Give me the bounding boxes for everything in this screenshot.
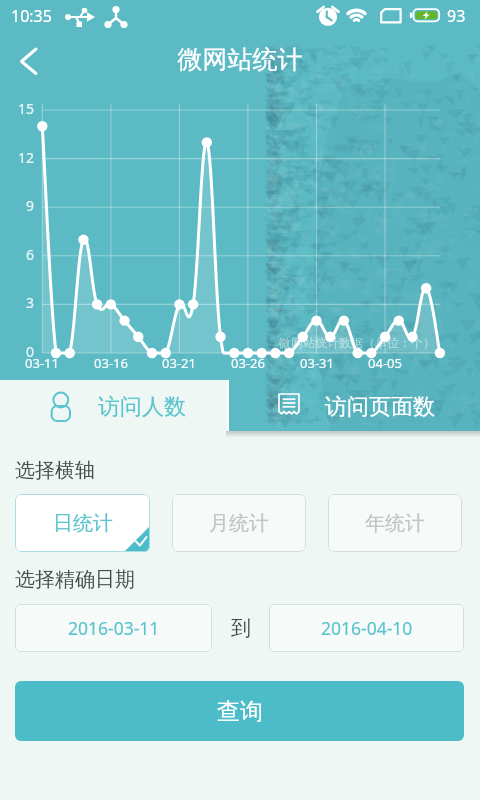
staticText: 10:35 <box>11 5 52 27</box>
button[interactable]: 访问人数 <box>0 380 227 431</box>
staticText: 03-16 <box>81 354 141 372</box>
staticText: 04-05 <box>355 354 415 372</box>
staticText: 03-21 <box>149 354 209 372</box>
staticText: 9 <box>0 196 34 215</box>
staticText: 03-31 <box>287 354 347 372</box>
staticText: 0 <box>0 342 34 361</box>
button[interactable]: 2016-04-10 <box>269 604 464 652</box>
button[interactable]: 日统计 <box>15 494 150 552</box>
staticText: 查询 <box>217 697 263 726</box>
staticText: 日统计 <box>53 511 113 536</box>
button[interactable]: 访问页面数 <box>229 380 480 431</box>
staticText: 月统计 <box>209 511 269 536</box>
staticText: 年统计 <box>365 511 425 536</box>
staticText: 访问人数 <box>98 393 186 421</box>
staticText: 15 <box>0 99 34 118</box>
staticText: 93 <box>447 5 466 27</box>
staticText: 03-11 <box>12 354 72 372</box>
staticText: 12 <box>0 148 34 167</box>
button[interactable]: 年统计 <box>328 494 462 552</box>
staticText: 2016-03-11 <box>68 616 160 640</box>
staticText: 到 <box>231 616 251 641</box>
staticText: 6 <box>0 245 34 264</box>
staticText: 2016-04-10 <box>321 616 413 640</box>
staticText: 03-26 <box>218 354 278 372</box>
staticText: 微网站统计 <box>0 44 480 75</box>
button[interactable]: Back <box>4 37 52 85</box>
button[interactable]: 2016-03-11 <box>15 604 212 652</box>
button[interactable]: 查询 <box>15 681 464 741</box>
staticText: 微网站统计数据（单位：个） <box>279 335 435 350</box>
staticText: 访问页面数 <box>325 393 435 421</box>
staticText: 选择精确日期 <box>15 567 135 592</box>
staticText: 选择横轴 <box>15 458 95 483</box>
staticText: 3 <box>0 293 34 312</box>
button[interactable]: 月统计 <box>172 494 306 552</box>
